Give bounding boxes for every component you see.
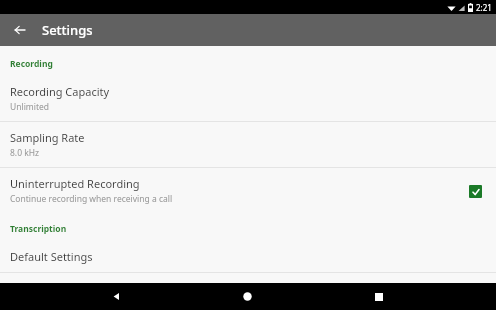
- button[interactable]: Sampling Rate: [0, 122, 496, 167]
- staticText: 8.0 kHz: [10, 147, 40, 159]
- staticText: Settings: [42, 21, 93, 39]
- staticText: Recording Capacity: [10, 84, 110, 99]
- staticText: Uninterrupted Recording: [10, 176, 140, 191]
- staticText: Continue recording when receiving a call: [10, 193, 173, 205]
- button[interactable]: Back: [6, 16, 34, 44]
- button[interactable]: Uninterrupted Recording: [0, 168, 496, 213]
- staticText: Unlimited: [10, 101, 50, 113]
- staticText: Transcription: [10, 223, 67, 235]
- button[interactable]: Home: [232, 283, 262, 310]
- staticText: 2:21: [476, 2, 492, 13]
- button[interactable]: Default Settings: [0, 241, 496, 272]
- button[interactable]: Uninterrupted Recording checkbox: [464, 180, 486, 202]
- staticText: Recording: [10, 58, 53, 70]
- button[interactable]: Recent apps: [364, 283, 394, 310]
- button[interactable]: Recording Capacity: [0, 76, 496, 121]
- button[interactable]: Back: [101, 283, 131, 310]
- staticText: Default Settings: [10, 249, 93, 264]
- staticText: Sampling Rate: [10, 130, 85, 145]
